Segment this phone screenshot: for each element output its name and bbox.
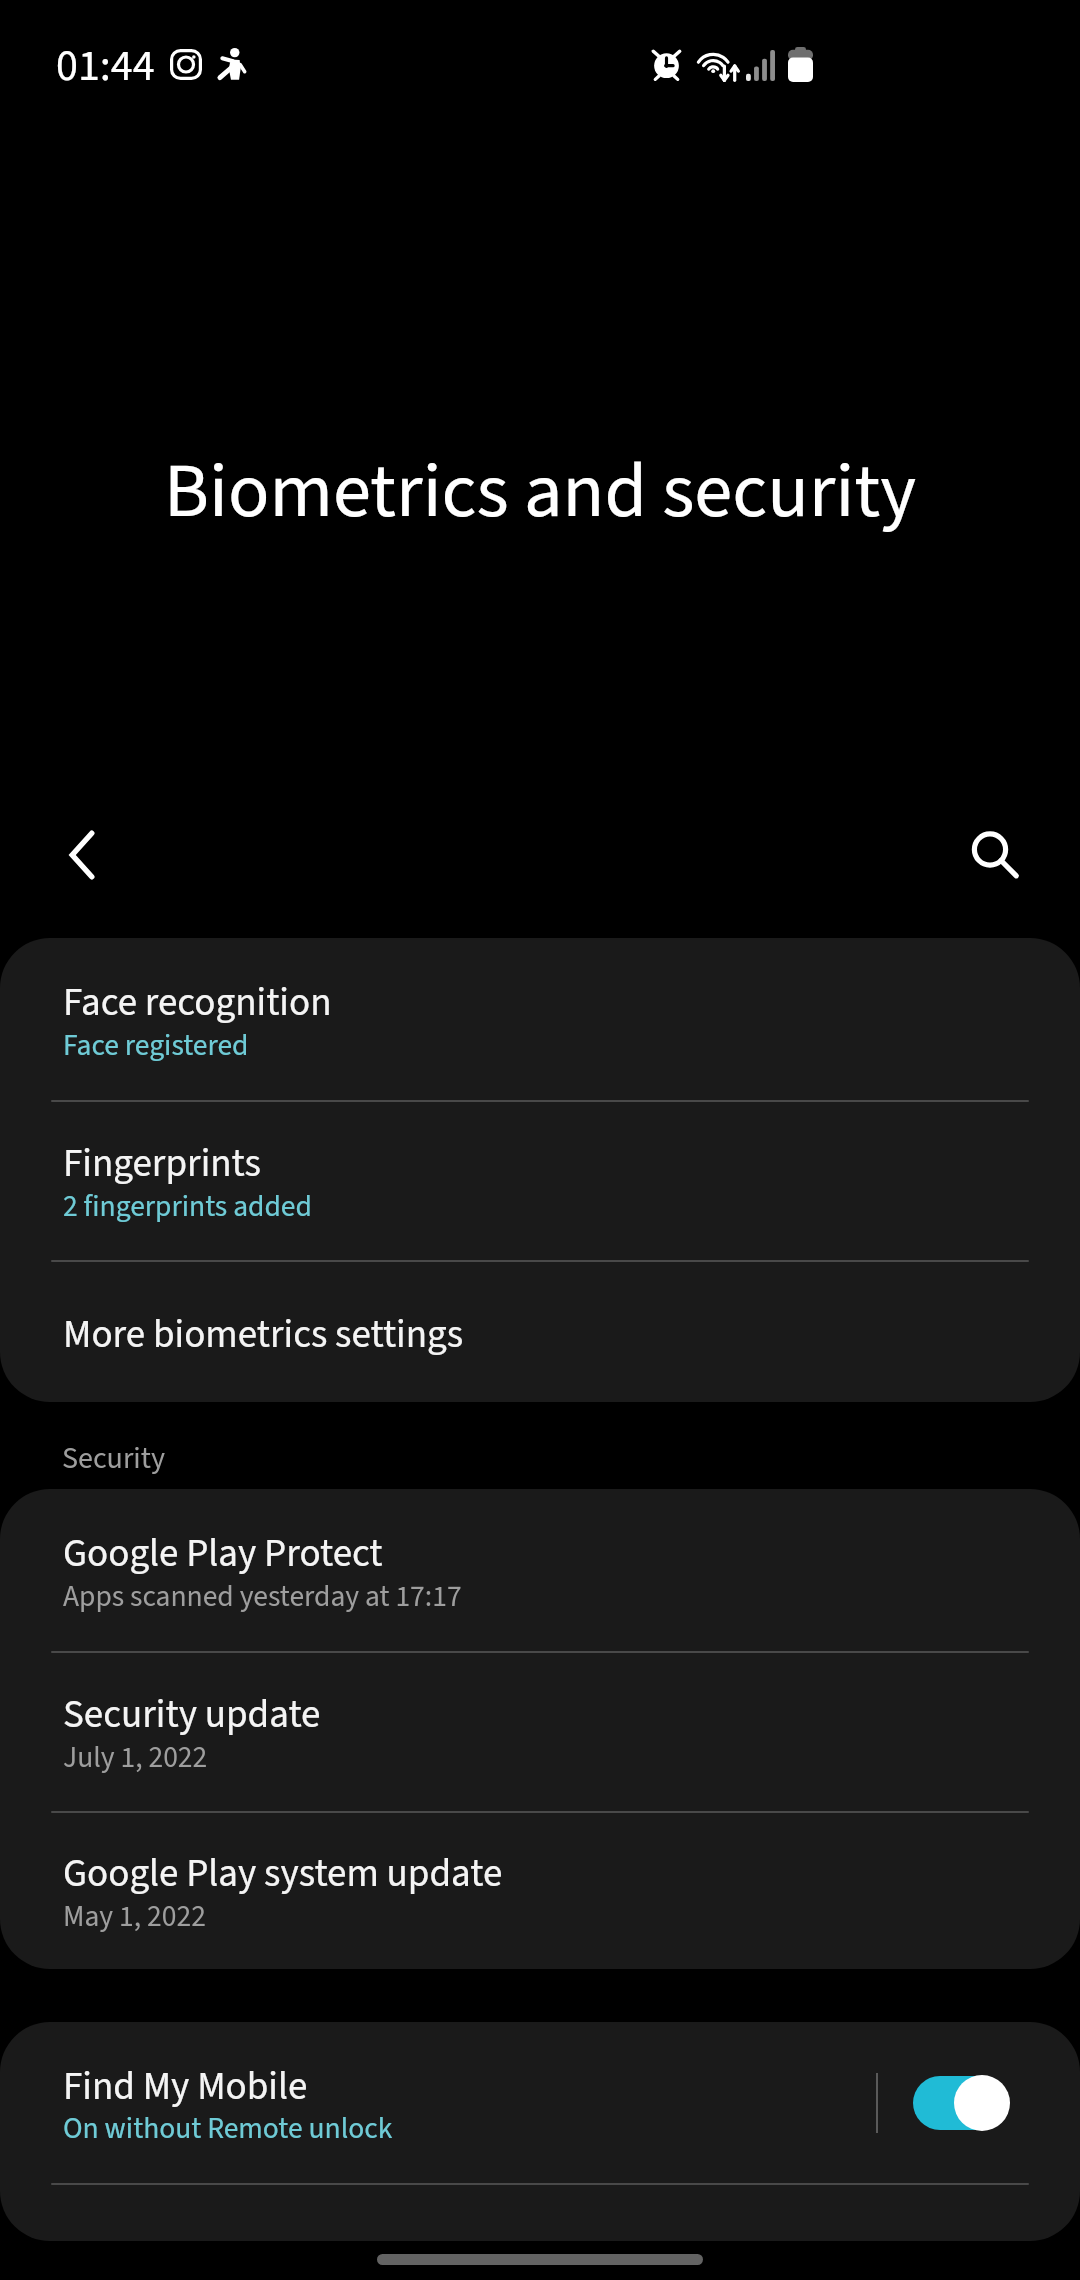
staticText: 2 fingerprints added bbox=[63, 1186, 312, 1228]
button[interactable] bbox=[0, 938, 1080, 1100]
button[interactable] bbox=[0, 1100, 1080, 1260]
button[interactable] bbox=[0, 1651, 1080, 1811]
button[interactable] bbox=[0, 2022, 1080, 2183]
staticText: Fingerprints bbox=[63, 1136, 261, 1192]
button[interactable]: Find My Mobile, on bbox=[900, 2022, 1080, 2183]
staticText: Google Play system update bbox=[63, 1846, 503, 1902]
staticText: Face recognition bbox=[63, 975, 332, 1031]
staticText: July 1, 2022 bbox=[63, 1737, 208, 1779]
staticText: May 1, 2022 bbox=[63, 1896, 206, 1938]
staticText: More biometrics settings bbox=[63, 1307, 464, 1363]
staticText: Security update bbox=[63, 1687, 321, 1743]
button[interactable]: Navigate up bbox=[27, 800, 137, 910]
staticText: Apps scanned yesterday at 17:17 bbox=[63, 1576, 462, 1618]
staticText: 01:44 bbox=[56, 35, 155, 98]
button[interactable] bbox=[0, 1489, 1080, 1651]
staticText: Biometrics and security bbox=[164, 438, 917, 547]
staticText: On without Remote unlock bbox=[63, 2108, 393, 2150]
button[interactable]: Search bbox=[936, 800, 1046, 910]
staticText: Security bbox=[62, 1437, 166, 1480]
button[interactable] bbox=[0, 1260, 1080, 1402]
staticText: Find My Mobile bbox=[63, 2059, 308, 2115]
staticText: Google Play Protect bbox=[63, 1526, 383, 1582]
button[interactable] bbox=[0, 1811, 1080, 1969]
staticText: Face registered bbox=[63, 1025, 249, 1067]
